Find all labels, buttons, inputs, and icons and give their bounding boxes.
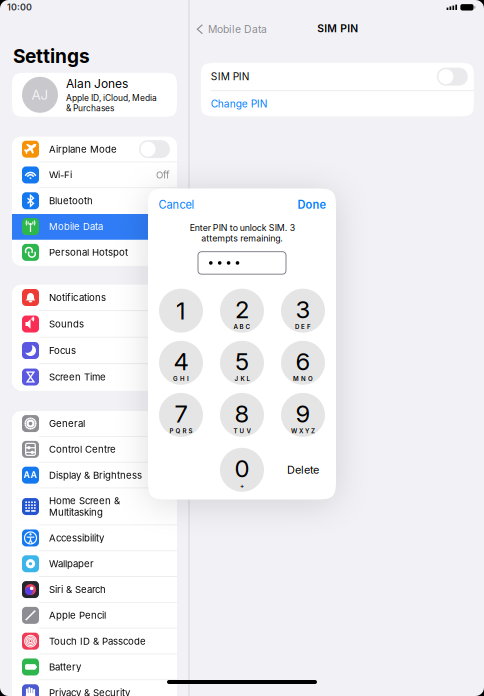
button[interactable]: 8 <box>220 393 264 437</box>
staticText: Accessibility <box>49 532 104 544</box>
staticText: 9 <box>295 399 310 428</box>
button[interactable]: Home Screen & Multitasking <box>12 488 177 525</box>
button[interactable]: Sounds <box>12 311 177 338</box>
staticText: D E F <box>295 323 311 330</box>
staticText: 10:00 <box>7 2 32 13</box>
staticText: Screen Time <box>49 371 106 383</box>
staticText: Alan Jones <box>66 76 128 91</box>
button[interactable]: Battery <box>12 654 177 680</box>
button[interactable]: Bluetooth <box>12 188 177 214</box>
staticText: Apple Pencil <box>49 609 106 621</box>
staticText: 0 <box>234 454 249 483</box>
staticText: Wi-Fi <box>49 169 72 181</box>
staticText: Display & Brightness <box>49 469 142 481</box>
button[interactable]: Accessibility <box>12 525 177 551</box>
staticText: Sounds <box>49 318 84 330</box>
staticText: 3 <box>295 295 310 324</box>
staticText: Battery <box>49 661 81 673</box>
staticText: Wallpaper <box>49 558 94 569</box>
button[interactable]: Change PIN <box>201 91 474 116</box>
button[interactable]: Airplane Mode <box>12 137 177 162</box>
staticText: Privacy & Security <box>49 687 130 696</box>
staticText: A B C <box>233 323 250 330</box>
staticText: Control Centre <box>49 443 116 455</box>
staticText: Apple ID, iCloud, Media & Purchases <box>66 93 157 113</box>
button[interactable]: Cancel <box>158 198 194 211</box>
staticText: P Q R S <box>169 427 192 435</box>
button[interactable]: Siri & Search <box>12 577 177 603</box>
staticText: General <box>49 418 85 429</box>
button[interactable]: Focus <box>12 338 177 364</box>
button[interactable]: 2 <box>220 289 264 333</box>
staticText: 4 <box>173 347 188 376</box>
button[interactable]: 5 <box>220 341 264 385</box>
staticText: Home Screen & Multitasking <box>49 495 120 518</box>
button[interactable]: Mobile Data <box>12 214 177 240</box>
staticText: AA <box>23 470 37 480</box>
staticText: Notifications <box>49 292 106 303</box>
staticText: 1 <box>176 296 186 325</box>
button[interactable]: Privacy & Security <box>12 680 177 696</box>
button[interactable]: Control Centre <box>12 437 177 463</box>
button[interactable]: Personal Hotspot <box>12 240 177 266</box>
staticText: Focus <box>49 345 76 356</box>
button[interactable]: Delete <box>281 448 325 492</box>
staticText: Done <box>297 198 326 211</box>
button[interactable]: 0 <box>220 448 264 492</box>
staticText: SIM PIN <box>317 22 358 35</box>
button[interactable]: Notifications <box>12 285 177 311</box>
staticText: 8 <box>234 399 249 428</box>
staticText: 7 <box>174 399 187 428</box>
staticText: W X Y Z <box>291 427 315 435</box>
staticText: Personal Hotspot <box>49 246 128 258</box>
button[interactable]: General <box>12 411 177 437</box>
staticText: Settings <box>13 45 90 68</box>
staticText: Mobile Data <box>49 221 103 232</box>
staticText: Off <box>156 169 170 181</box>
button[interactable]: SIM PIN <box>201 63 474 90</box>
staticText: 2 <box>235 295 249 324</box>
staticText: Mobile Data <box>208 23 267 35</box>
button[interactable]: 1 <box>159 289 203 333</box>
button[interactable]: Mobile Data <box>196 19 267 39</box>
staticText: G H I <box>173 375 189 382</box>
button[interactable]: Touch ID & Passcode <box>12 629 177 654</box>
staticText: Change PIN <box>211 98 268 110</box>
staticText: Siri & Search <box>49 584 106 595</box>
button[interactable]: 4 <box>159 341 203 385</box>
button[interactable]: AA <box>12 463 177 488</box>
staticText: J K L <box>234 375 249 382</box>
button[interactable]: Wi-Fi <box>12 162 177 188</box>
staticText: + <box>240 482 244 489</box>
button[interactable]: 3 <box>281 289 325 333</box>
staticText: Delete <box>287 463 319 476</box>
staticText: 5 <box>235 347 249 376</box>
button[interactable]: 7 <box>159 393 203 437</box>
staticText: M N O <box>293 375 313 382</box>
button[interactable]: Wallpaper <box>12 551 177 577</box>
staticText: Enter PIN to unlock SIM. 3 attempts rema… <box>189 222 294 244</box>
staticText: AJ <box>31 87 48 103</box>
staticText: Bluetooth <box>49 195 93 206</box>
staticText: Airplane Mode <box>49 143 117 155</box>
button[interactable]: Done <box>297 198 326 211</box>
button[interactable]: 9 <box>281 393 325 437</box>
staticText: Cancel <box>158 198 194 211</box>
staticText: T U V <box>233 427 250 435</box>
button[interactable]: 6 <box>281 341 325 385</box>
button[interactable]: Screen Time <box>12 364 177 391</box>
button[interactable]: AJ <box>12 73 177 117</box>
button[interactable]: Apple Pencil <box>12 603 177 629</box>
staticText: SIM PIN <box>211 70 250 83</box>
staticText: Touch ID & Passcode <box>49 635 146 647</box>
staticText: 6 <box>295 347 310 376</box>
